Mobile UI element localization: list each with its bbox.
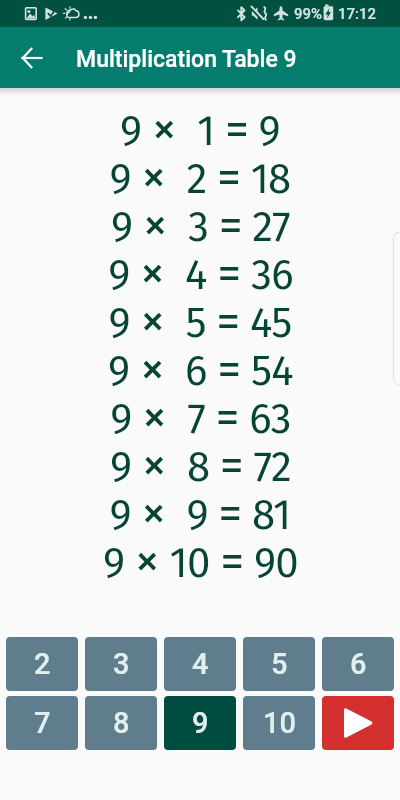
staticText: 8 [113, 706, 130, 740]
staticText: 9 × 8 = 72 [110, 434, 291, 482]
staticText: Multiplication Table 9 [76, 46, 297, 73]
staticText: 9 × 3 = 27 [111, 194, 290, 242]
button[interactable]: 8 [85, 696, 157, 750]
button[interactable]: 7 [6, 696, 78, 750]
button[interactable]: 5 [243, 637, 315, 691]
button[interactable]: 10 [243, 696, 315, 750]
button[interactable]: 6 [322, 637, 394, 691]
staticText: 7 [34, 706, 51, 740]
staticText: 9 × 2 = 18 [109, 146, 291, 194]
staticText: 4 [192, 647, 209, 681]
staticText: 9 × 10 = 90 [103, 530, 298, 578]
staticText: 99% [294, 5, 323, 23]
staticText: 10 [263, 706, 296, 740]
staticText: 5 [271, 647, 288, 681]
staticText: 17:12 [338, 5, 377, 23]
button[interactable]: Back [11, 37, 52, 78]
staticText: 6 [350, 647, 367, 681]
button[interactable]: Play [322, 696, 394, 750]
staticText: 9 × 7 = 63 [110, 386, 291, 434]
staticText: 9 × 5 = 45 [108, 290, 292, 338]
button[interactable]: 2 [6, 637, 78, 691]
staticText: 9 [192, 706, 209, 740]
staticText: 9 × 4 = 36 [108, 242, 293, 290]
staticText: 3 [113, 647, 130, 681]
button[interactable]: 3 [85, 637, 157, 691]
staticText: 9 × 9 = 81 [109, 482, 291, 530]
button[interactable]: 9 [164, 696, 236, 750]
staticText: 9 × 6 = 54 [108, 338, 293, 386]
button[interactable]: 4 [164, 637, 236, 691]
staticText: 9 × 1 = 9 [120, 98, 280, 146]
staticText: 2 [34, 647, 51, 681]
